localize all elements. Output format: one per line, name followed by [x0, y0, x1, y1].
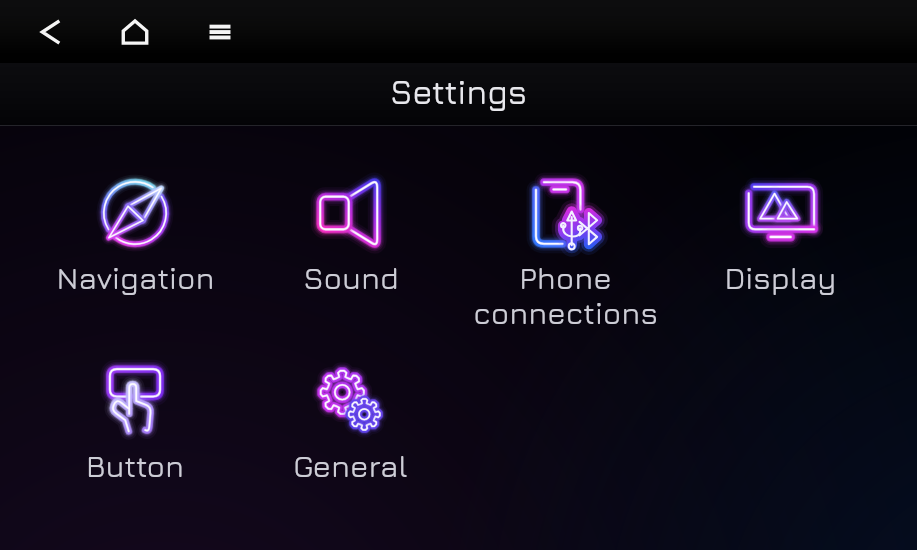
button[interactable]: Button	[27, 363, 243, 483]
button[interactable]: Home	[112, 9, 158, 55]
staticText: Phone connections	[473, 260, 658, 330]
staticText: Display	[724, 260, 837, 295]
button[interactable]: Display	[673, 175, 888, 295]
staticText: Sound	[303, 260, 399, 295]
button[interactable]: Sound	[243, 175, 458, 295]
staticText: Navigation	[56, 260, 215, 295]
button[interactable]: Phone connections	[458, 175, 673, 330]
button[interactable]: Menu	[197, 9, 243, 55]
staticText: General	[293, 448, 408, 483]
staticText: Settings	[390, 72, 528, 111]
button[interactable]: Navigation	[27, 175, 243, 295]
button[interactable]: Back	[27, 9, 73, 55]
staticText: Button	[86, 448, 184, 483]
button[interactable]: General	[243, 363, 458, 483]
